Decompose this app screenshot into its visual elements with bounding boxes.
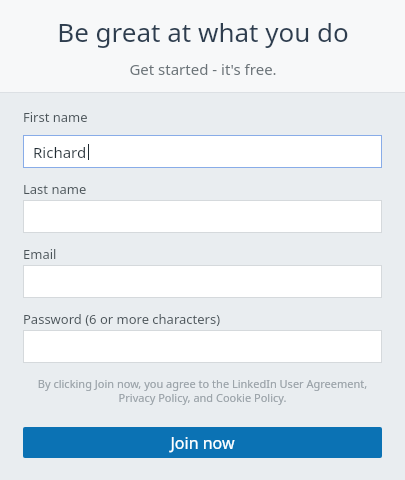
staticText: Last name	[23, 180, 87, 198]
button[interactable]: First name	[23, 135, 382, 168]
staticText: By clicking Join now, you agree to the L…	[23, 376, 382, 405]
staticText: Be great at what you do	[57, 14, 349, 49]
button[interactable]: Email	[23, 265, 382, 298]
staticText: Email	[23, 245, 57, 263]
staticText: Richard	[33, 142, 87, 162]
staticText: Password (6 or more characters)	[23, 310, 221, 328]
button[interactable]: Password	[23, 330, 382, 363]
staticText: Join now	[170, 432, 235, 454]
button[interactable]: Join now	[23, 427, 382, 458]
staticText: First name	[23, 108, 88, 126]
button[interactable]: Last name	[23, 200, 382, 233]
staticText: Get started - it's free.	[129, 59, 277, 79]
